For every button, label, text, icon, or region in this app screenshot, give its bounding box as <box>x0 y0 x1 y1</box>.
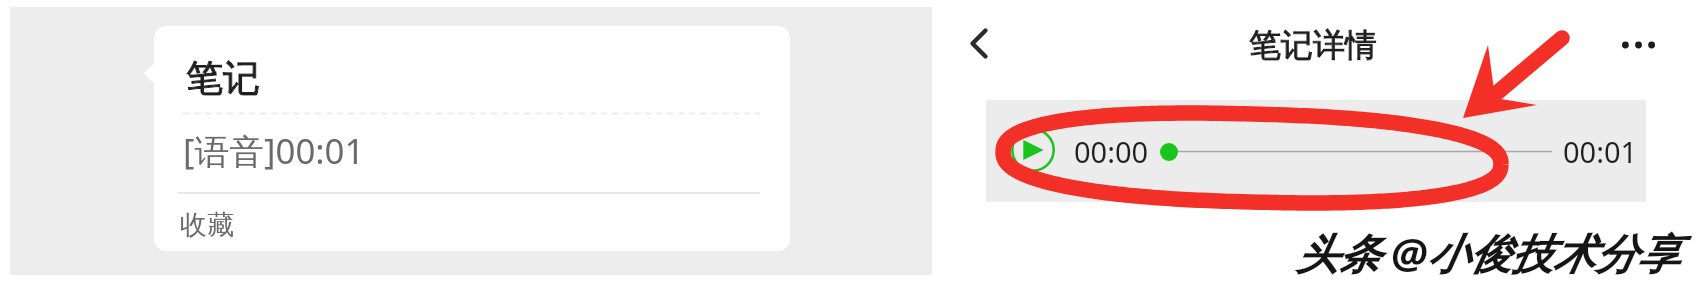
staticText: 笔记 <box>186 55 260 102</box>
staticText: 笔记详情 <box>1249 25 1377 65</box>
staticText: 00:01 <box>1563 132 1638 171</box>
button[interactable]: 00:00 <box>986 100 1646 202</box>
staticText: 头条 @小俊技术分享 <box>1296 224 1679 281</box>
staticText: 笔记 <box>186 55 260 102</box>
button[interactable]: More options <box>1613 20 1663 70</box>
staticText: [语音]00:01 <box>183 127 365 175</box>
button[interactable]: Back <box>954 18 1004 68</box>
staticText: 笔记详情 <box>1249 25 1377 65</box>
button[interactable]: 笔记 <box>154 26 790 251</box>
staticText: 00:00 <box>1074 132 1149 171</box>
staticText: 收藏 <box>180 208 234 242</box>
